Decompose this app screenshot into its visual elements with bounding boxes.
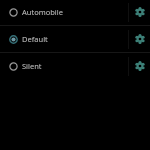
button[interactable]: Settings <box>129 0 150 25</box>
button[interactable]: Silent <box>0 53 128 79</box>
button[interactable]: Default <box>0 26 128 52</box>
staticText: Default <box>22 34 48 44</box>
button[interactable]: Automobile <box>0 0 128 25</box>
button[interactable]: Settings <box>129 53 150 79</box>
button[interactable]: Settings <box>129 26 150 52</box>
staticText: Automobile <box>22 7 63 17</box>
staticText: Silent <box>22 61 42 71</box>
